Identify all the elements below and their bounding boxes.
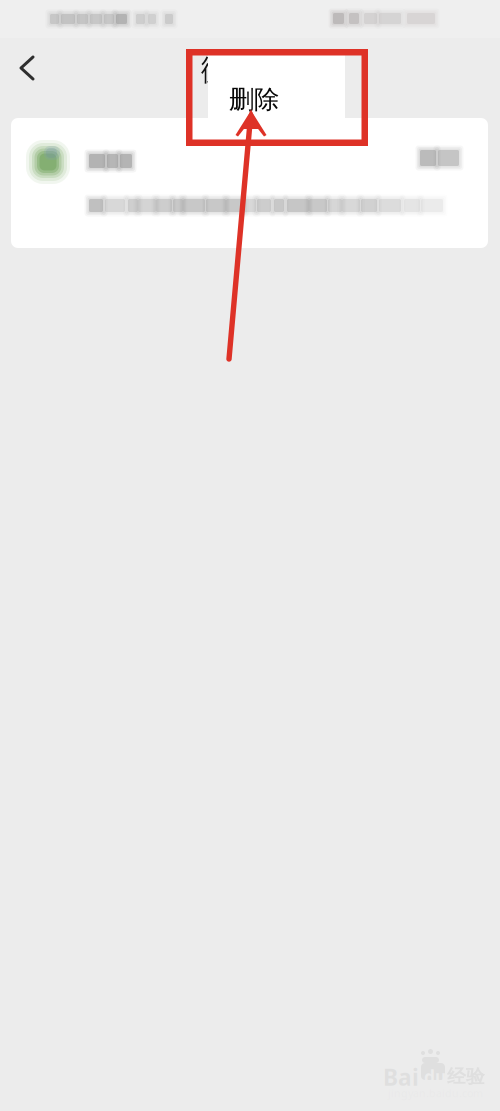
button[interactable]: Back	[5, 46, 49, 90]
staticText: 删除	[229, 84, 279, 115]
button[interactable]: 删除	[208, 50, 345, 137]
staticText: 微信	[201, 52, 259, 88]
button[interactable]	[11, 118, 488, 248]
staticText: du	[424, 1065, 446, 1088]
staticText: 经验	[447, 1065, 485, 1088]
staticText: Bai	[383, 1062, 419, 1092]
